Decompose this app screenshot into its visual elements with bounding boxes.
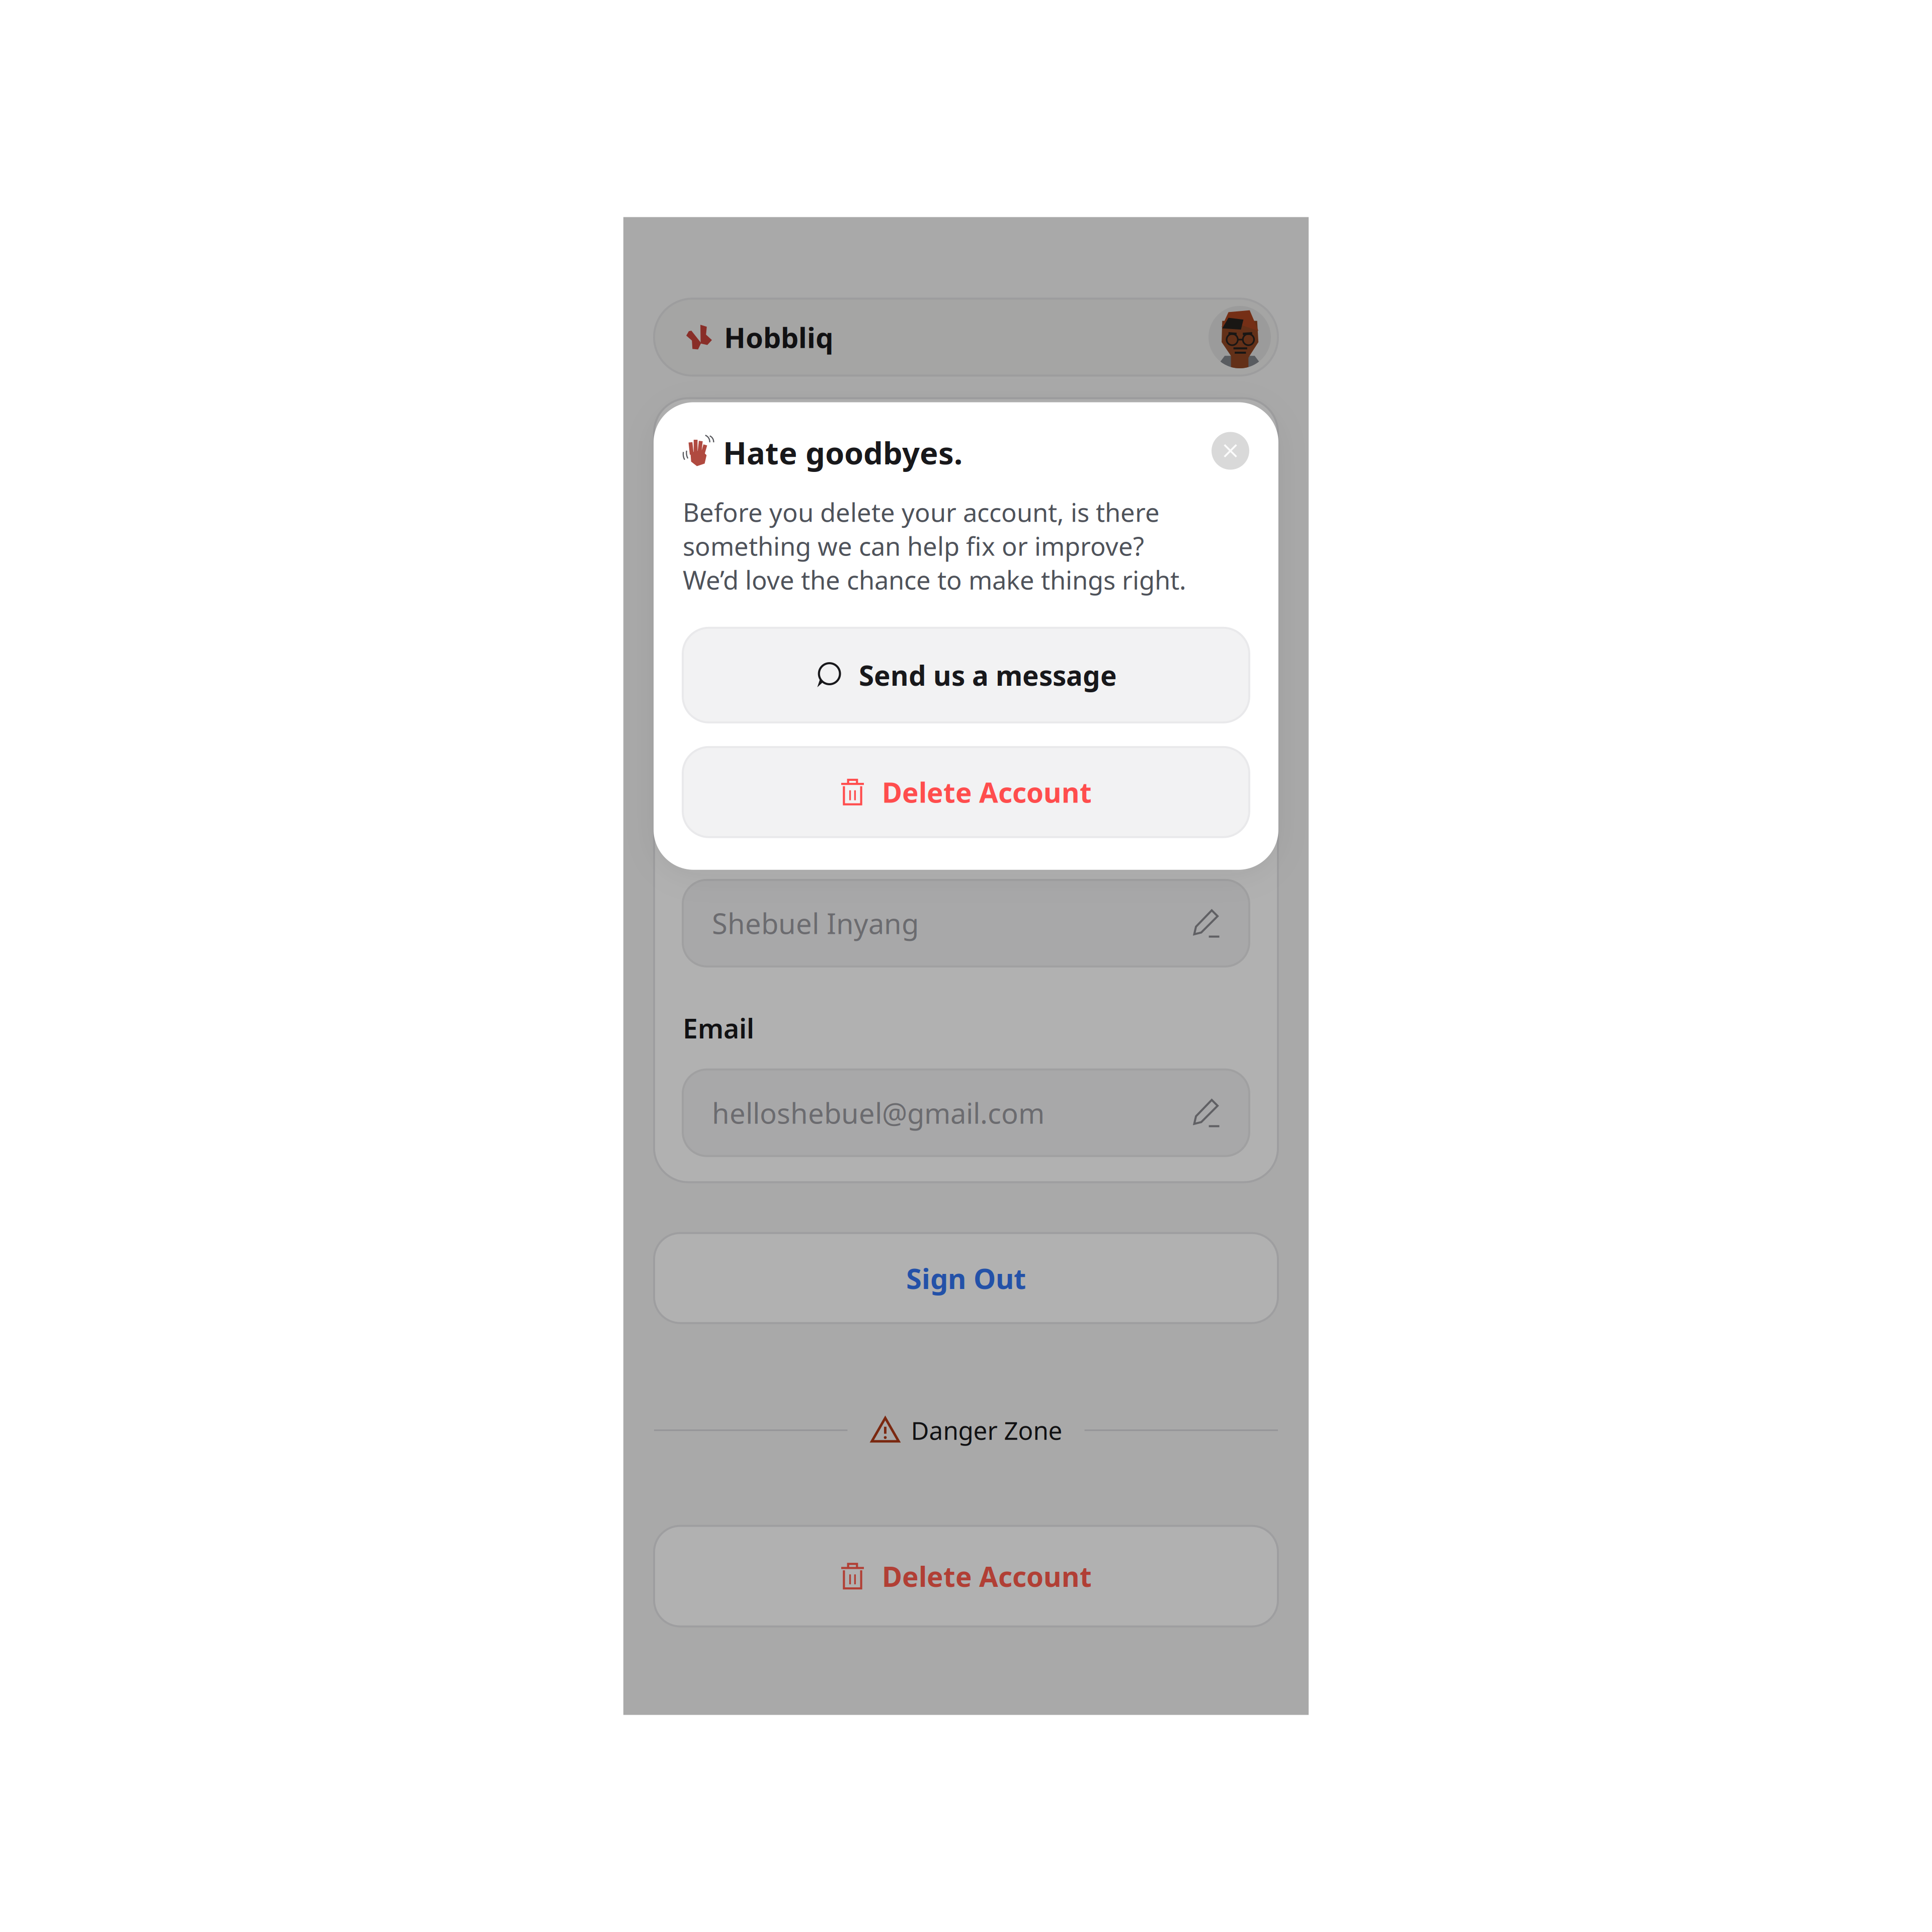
- staticText: Change photo: [906, 619, 1073, 651]
- staticText: Shebuel Inyang: [712, 904, 919, 942]
- button[interactable]: Delete Account: [683, 747, 1249, 837]
- button[interactable]: Hobbliq: [654, 299, 1278, 376]
- button[interactable]: helloshebuel@gmail.com: [683, 1069, 1249, 1156]
- button[interactable]: Close: [1212, 432, 1249, 470]
- staticText: Sign Out: [906, 1259, 1026, 1297]
- staticText: Full Name: [683, 829, 815, 865]
- staticText: Shebuel Inyang: [888, 518, 1103, 555]
- staticText: Hobbliq: [724, 318, 833, 356]
- button[interactable]: Send us a message: [683, 628, 1249, 722]
- staticText: We’d love the chance to make things righ…: [683, 563, 1186, 597]
- staticText: Hate goodbyes.: [723, 432, 962, 473]
- staticText: Bio: [683, 725, 725, 761]
- staticText: Delete Account: [882, 774, 1092, 810]
- staticText: Email: [683, 1010, 754, 1046]
- staticText: Send us a message: [859, 657, 1117, 693]
- staticText: Profile: [683, 427, 783, 468]
- staticText: Delete Account: [882, 1558, 1092, 1594]
- button[interactable]: Sign Out: [654, 1233, 1278, 1323]
- staticText: something we can help fix or improve?: [683, 529, 1144, 563]
- staticText: helloshebuel@gmail.com: [712, 1094, 1044, 1131]
- staticText: Danger Zone: [911, 1414, 1062, 1447]
- staticText: Before you delete your account, is there: [683, 495, 1160, 529]
- button[interactable]: Shebuel Inyang: [683, 880, 1249, 966]
- button[interactable]: Delete Account: [654, 1526, 1278, 1626]
- staticText: Building small things for curious people…: [683, 774, 1164, 808]
- staticText: PNG or JPG, up to 4 MB: [888, 567, 1149, 599]
- button[interactable]: Change photo: [888, 611, 1091, 660]
